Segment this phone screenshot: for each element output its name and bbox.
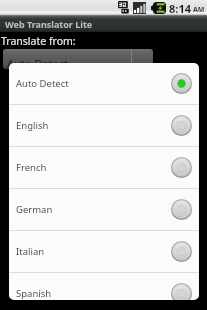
staticText: Auto Detect [16,77,171,90]
button[interactable]: German [9,189,199,230]
button[interactable]: Spanish [9,273,199,300]
button[interactable]: Italian [9,231,199,272]
staticText: Translate from: [1,34,76,48]
staticText: Italian [16,245,171,258]
staticText: English [16,119,171,132]
staticText: Spanish [16,287,171,300]
button[interactable]: Auto Detect [3,49,153,69]
button[interactable]: English [9,105,199,146]
staticText: French [16,161,171,174]
button[interactable]: French [9,147,199,188]
staticText: AM [193,5,205,15]
staticText: 8:14 [169,1,191,16]
staticText: Web Translator Lite [5,18,93,30]
button[interactable]: Auto Detect [9,63,199,104]
staticText: German [16,203,171,216]
staticText: Auto Detect [7,56,68,69]
